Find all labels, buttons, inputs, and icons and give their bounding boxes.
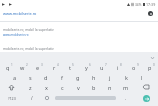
staticText: ?123: [8, 96, 16, 101]
staticText: v: [77, 84, 80, 91]
staticText: d: [44, 74, 48, 81]
staticText: .: [125, 95, 127, 101]
button[interactable]: Shift: [0, 82, 23, 92]
button[interactable]: f: [54, 72, 70, 82]
button[interactable]: Clear: [148, 11, 153, 16]
button[interactable]: d: [38, 72, 54, 82]
button[interactable]: Go: [135, 92, 158, 104]
staticText: j: [109, 74, 111, 81]
button[interactable]: /: [24, 92, 39, 104]
staticText: 3: [41, 63, 43, 67]
staticText: 17:39: [146, 2, 156, 7]
staticText: c: [61, 84, 64, 91]
staticText: z: [29, 84, 32, 91]
staticText: k: [125, 74, 128, 81]
button[interactable]: a: [7, 72, 22, 82]
staticText: y: [85, 64, 88, 71]
button[interactable]: w: [15, 62, 30, 72]
button[interactable]: y: [78, 62, 94, 72]
staticText: n: [108, 84, 112, 91]
button[interactable]: e: [30, 62, 46, 72]
button[interactable]: b: [86, 82, 102, 92]
staticText: s: [29, 74, 32, 81]
button[interactable]: Emoji: [39, 92, 54, 104]
staticText: t: [69, 64, 71, 71]
button[interactable]: Backspace: [134, 82, 158, 92]
staticText: 7: [105, 63, 107, 67]
staticText: w: [20, 64, 25, 71]
staticText: h: [92, 74, 96, 81]
staticText: q: [6, 64, 10, 71]
button[interactable]: t: [62, 62, 78, 72]
staticText: 9: [137, 63, 139, 67]
button[interactable]: j: [102, 72, 118, 82]
staticText: 6: [89, 63, 91, 67]
staticText: o: [132, 64, 136, 71]
staticText: r: [53, 64, 56, 71]
staticText: 8: [120, 63, 122, 67]
button[interactable]: z: [23, 82, 38, 92]
staticText: 1: [11, 63, 13, 67]
staticText: p: [148, 64, 152, 71]
staticText: f: [61, 74, 63, 81]
button[interactable]: c: [54, 82, 70, 92]
button[interactable]: u: [94, 62, 110, 72]
staticText: m: [123, 84, 129, 91]
staticText: i: [117, 64, 119, 71]
button[interactable]: r: [46, 62, 62, 72]
button[interactable]: q: [0, 62, 15, 72]
button[interactable]: i: [110, 62, 126, 72]
staticText: mobilserie.ro, mobil la superlativ: [3, 46, 54, 50]
button[interactable]: g: [70, 72, 86, 82]
staticText: u: [100, 64, 104, 71]
button[interactable]: n: [102, 82, 118, 92]
button[interactable]: Expand toolbar: [150, 55, 155, 60]
button[interactable]: v: [70, 82, 86, 92]
staticText: www.mobilserie.ro: [3, 11, 37, 16]
button[interactable]: l: [134, 72, 150, 82]
button[interactable]: h: [86, 72, 102, 82]
button[interactable]: p: [142, 62, 158, 72]
staticText: 0: [153, 63, 155, 67]
button[interactable]: mobilserie.ro, mobil la superlativ: [0, 22, 158, 41]
button[interactable]: ?123: [0, 92, 24, 104]
staticText: g: [76, 74, 80, 81]
button[interactable]: mobilserie.ro, mobil la superlativ: [0, 41, 158, 60]
staticText: e: [36, 64, 40, 71]
button[interactable]: m: [118, 82, 134, 92]
staticText: a: [13, 74, 17, 81]
staticText: 4: [57, 63, 59, 67]
button[interactable]: x: [38, 82, 54, 92]
staticText: x: [45, 84, 48, 91]
staticText: l: [141, 74, 143, 81]
staticText: 5: [72, 63, 74, 67]
staticText: mobilserie.ro, mobil la superlativ: [3, 27, 54, 31]
staticText: /: [31, 95, 33, 101]
button[interactable]: s: [22, 72, 38, 82]
button[interactable]: k: [118, 72, 134, 82]
button[interactable]: o: [126, 62, 142, 72]
staticText: 34%: [135, 3, 142, 7]
staticText: www.mobilserie.ro: [3, 33, 29, 37]
staticText: 2: [26, 63, 28, 67]
staticText: b: [92, 84, 96, 91]
